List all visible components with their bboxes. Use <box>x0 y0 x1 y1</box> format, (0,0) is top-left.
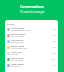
button[interactable]: Evan Cole <box>5 50 58 56</box>
staticText: Bianca Reed <box>11 32 25 35</box>
staticText: Alice Moore <box>11 26 25 29</box>
button[interactable]: Fiona Park <box>5 56 58 62</box>
staticText: 9:41 <box>52 28 56 31</box>
staticText: Carl Rivera <box>11 38 24 41</box>
staticText: Conversations <box>20 4 44 9</box>
staticText: 8:55 <box>52 40 56 43</box>
staticText: See you soon <box>11 35 25 38</box>
button[interactable]: Greg Olson <box>5 62 58 68</box>
staticText: Mon <box>51 58 56 61</box>
staticText: 7:30 <box>52 52 56 55</box>
staticText: Evan Cole <box>11 50 23 53</box>
button[interactable]: Carl Rivera <box>5 38 58 44</box>
staticText: Dana Lopez <box>11 44 25 47</box>
staticText: Recent <box>7 22 15 25</box>
staticText: 12 unread messages <box>19 10 45 14</box>
button[interactable]: Dana Lopez <box>5 44 58 50</box>
staticText: 8:02 <box>52 46 56 49</box>
staticText: Call me later <box>11 59 24 62</box>
staticText: Thanks a lot! <box>11 41 24 44</box>
staticText: Sun <box>52 64 56 67</box>
staticText: 9:12 <box>52 34 56 37</box>
staticText: Fiona Park <box>11 56 24 59</box>
staticText: Nice one <box>11 65 20 68</box>
staticText: Sounds good to me <box>11 29 31 32</box>
button[interactable]: Bianca Reed <box>5 32 58 38</box>
staticText: On my way now <box>11 47 27 50</box>
staticText: Greg Olson <box>11 62 24 65</box>
button[interactable]: Alice Moore <box>5 26 58 32</box>
staticText: Ok sure <box>11 53 19 56</box>
